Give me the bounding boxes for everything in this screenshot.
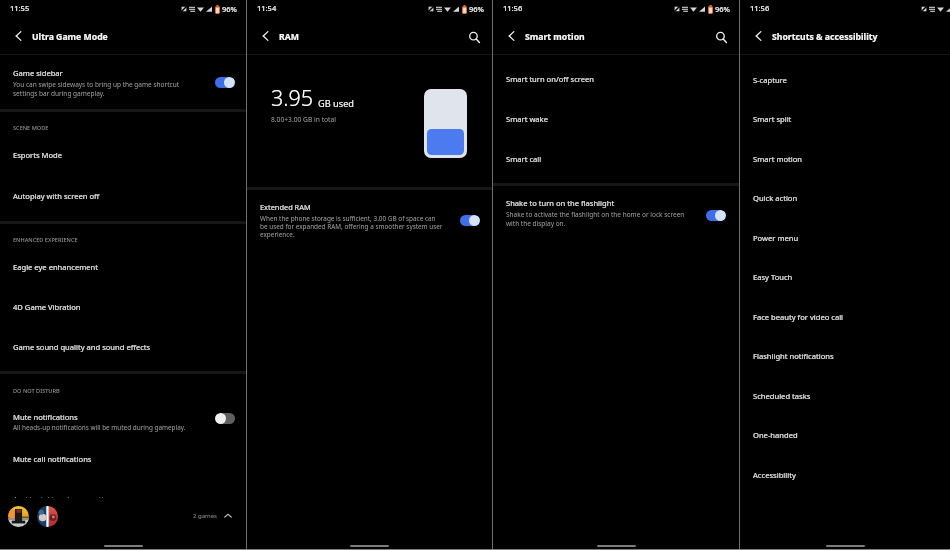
button[interactable]: Esports Mode bbox=[0, 136, 246, 176]
button[interactable]: Navigate up bbox=[754, 30, 762, 41]
staticText: S-capture bbox=[753, 75, 787, 85]
staticText: RAM bbox=[279, 31, 299, 43]
button[interactable]: One-handed bbox=[740, 415, 950, 455]
staticText: Accidental touch prevention bbox=[13, 494, 113, 498]
button[interactable]: Eagle eye enhancement bbox=[0, 248, 246, 288]
staticText: 4D Game Vibration bbox=[13, 302, 81, 312]
staticText: DO NOT DISTURB bbox=[13, 387, 60, 395]
staticText: Mute notifications bbox=[13, 412, 78, 422]
staticText: Game sound quality and sound effects bbox=[13, 342, 151, 352]
button[interactable]: Mute call notifications bbox=[0, 440, 246, 480]
staticText: Mute call notifications bbox=[13, 454, 92, 464]
button[interactable]: Open game 1 bbox=[8, 506, 29, 527]
staticText: You can swipe sideways to bring up the g… bbox=[13, 80, 180, 98]
button[interactable]: Autoplay with screen off bbox=[0, 176, 246, 221]
staticText: Game sidebar bbox=[13, 68, 63, 78]
button[interactable]: Search bbox=[465, 28, 483, 46]
staticText: Power menu bbox=[753, 233, 799, 243]
button[interactable]: Navigate up bbox=[261, 30, 269, 41]
button[interactable]: 2 games bbox=[190, 509, 235, 523]
staticText: 11:56 bbox=[750, 3, 770, 13]
staticText: ENHANCED EXPERIENCE bbox=[13, 236, 78, 244]
staticText: 96% bbox=[222, 4, 237, 14]
staticText: Shake to turn on the flashlight bbox=[506, 198, 615, 208]
staticText: Shake to activate the flashlight on the … bbox=[506, 210, 685, 228]
button[interactable]: Mute notifications bbox=[0, 400, 246, 440]
button[interactable]: Face beauty for video call bbox=[740, 297, 950, 337]
staticText: Eagle eye enhancement bbox=[13, 262, 98, 272]
staticText: 11:54 bbox=[257, 3, 277, 13]
staticText: 11:55 bbox=[10, 3, 30, 13]
button[interactable]: Game sidebar bbox=[0, 55, 246, 109]
staticText: Esports Mode bbox=[13, 150, 63, 160]
button[interactable]: Smart wake bbox=[493, 99, 739, 139]
staticText: Autoplay with screen off bbox=[13, 191, 100, 201]
button[interactable]: Search bbox=[712, 28, 730, 46]
button[interactable]: Flashlight notifications bbox=[740, 336, 950, 376]
button[interactable]: Switch on bbox=[460, 215, 480, 226]
staticText: Smart motion bbox=[753, 154, 803, 164]
staticText: Scheduled tasks bbox=[753, 391, 811, 401]
staticText: Smart wake bbox=[506, 114, 548, 124]
staticText: 8.00+3.00 GB in total bbox=[271, 115, 337, 124]
staticText: SCENE MODE bbox=[13, 124, 49, 132]
staticText: 2 games bbox=[193, 512, 217, 520]
button[interactable]: Extended RAM bbox=[247, 190, 492, 250]
button[interactable]: Switch off bbox=[215, 413, 235, 424]
staticText: GB used bbox=[318, 97, 354, 110]
staticText: Shortcuts & accessibility bbox=[772, 31, 878, 43]
button[interactable]: Navigate up bbox=[507, 30, 515, 41]
button[interactable]: Switch on bbox=[215, 77, 235, 88]
button[interactable]: 4D Game Vibration bbox=[0, 288, 246, 328]
staticText: Smart turn on/off screen bbox=[506, 74, 595, 84]
button[interactable]: Open game 2 bbox=[37, 506, 58, 527]
button[interactable]: Accessibility bbox=[740, 455, 950, 495]
staticText: Smart motion bbox=[525, 31, 585, 43]
staticText: Quick action bbox=[753, 193, 798, 203]
button[interactable]: Game sound quality and sound effects bbox=[0, 328, 246, 371]
button[interactable]: Navigate up bbox=[14, 30, 22, 41]
staticText: When the phone storage is sufficient, 3.… bbox=[260, 214, 443, 239]
staticText: Smart split bbox=[753, 114, 792, 124]
staticText: 11:56 bbox=[503, 3, 523, 13]
staticText: 96% bbox=[715, 4, 730, 14]
staticText: Extended RAM bbox=[260, 202, 311, 212]
staticText: Easy Touch bbox=[753, 272, 793, 282]
staticText: All heads-up notifications will be muted… bbox=[13, 423, 186, 432]
button[interactable]: Quick action bbox=[740, 178, 950, 218]
staticText: Face beauty for video call bbox=[753, 312, 844, 322]
button[interactable]: S-capture bbox=[740, 60, 950, 100]
staticText: Ultra Game Mode bbox=[32, 31, 108, 43]
staticText: Flashlight notifications bbox=[753, 351, 834, 361]
button[interactable]: Easy Touch bbox=[740, 257, 950, 297]
button[interactable]: Smart split bbox=[740, 99, 950, 139]
button[interactable]: Smart turn on/off screen bbox=[493, 59, 739, 99]
button[interactable]: Shake to turn on the flashlight bbox=[493, 186, 739, 236]
button[interactable]: Accidental touch prevention bbox=[0, 480, 246, 498]
staticText: Smart call bbox=[506, 154, 542, 164]
button[interactable]: Power menu bbox=[740, 218, 950, 258]
button[interactable]: Scheduled tasks bbox=[740, 376, 950, 416]
staticText: One-handed bbox=[753, 430, 798, 440]
staticText: Accessibility bbox=[753, 470, 796, 480]
button[interactable]: Smart motion bbox=[740, 139, 950, 179]
button[interactable]: Smart call bbox=[493, 139, 739, 179]
staticText: 3.95 bbox=[271, 83, 314, 112]
staticText: 96% bbox=[469, 4, 484, 14]
button[interactable]: Switch on bbox=[706, 210, 726, 221]
